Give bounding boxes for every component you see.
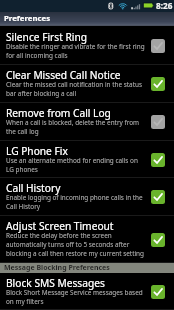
- staticText: LG Phone Fix: [6, 144, 68, 158]
- staticText: Clear Missed Call Notice: [6, 68, 121, 82]
- staticText: When a call is blocked, delete the entry…: [6, 118, 146, 136]
- staticText: Silence First Ring: [6, 30, 88, 44]
- button[interactable]: Adjust Screen Timeout: [0, 216, 174, 263]
- button[interactable]: Remove from Call Log: [0, 103, 174, 141]
- button[interactable]: Enabled: [151, 285, 165, 299]
- button[interactable]: Enabled: [151, 77, 165, 91]
- staticText: Call History: [6, 181, 61, 195]
- staticText: Reduce the delay before the screen autom…: [6, 231, 146, 258]
- button[interactable]: Call History: [0, 178, 174, 216]
- button[interactable]: Disabled: [151, 39, 165, 53]
- button[interactable]: Clear Missed Call Notice: [0, 65, 174, 103]
- staticText: 8:26: [156, 0, 173, 9]
- button[interactable]: Enabled: [151, 153, 165, 167]
- staticText: Enable logging of incoming phone calls i…: [6, 193, 146, 211]
- staticText: Clear the missed call notification in th…: [6, 80, 146, 98]
- staticText: Preferences: [4, 13, 51, 24]
- button[interactable]: Block SMS Messages: [0, 273, 174, 310]
- button[interactable]: Silence First Ring: [0, 26, 174, 65]
- button[interactable]: LG Phone Fix: [0, 141, 174, 178]
- staticText: Disable the ringer and vibrate for the f…: [6, 42, 146, 60]
- staticText: Remove from Call Log: [6, 106, 111, 120]
- staticText: Adjust Screen Timeout: [6, 219, 114, 233]
- button[interactable]: Enabled: [151, 190, 165, 204]
- button[interactable]: Enabled: [151, 233, 165, 247]
- staticText: Message Blocking Preferences: [4, 263, 110, 273]
- staticText: Block Short Message Service messages bas…: [6, 288, 146, 306]
- staticText: Use an alternate method for ending calls…: [6, 156, 146, 174]
- button[interactable]: Disabled: [151, 115, 165, 129]
- staticText: Block SMS Messages: [6, 276, 105, 290]
- button[interactable]: Preferences: [0, 12, 174, 26]
